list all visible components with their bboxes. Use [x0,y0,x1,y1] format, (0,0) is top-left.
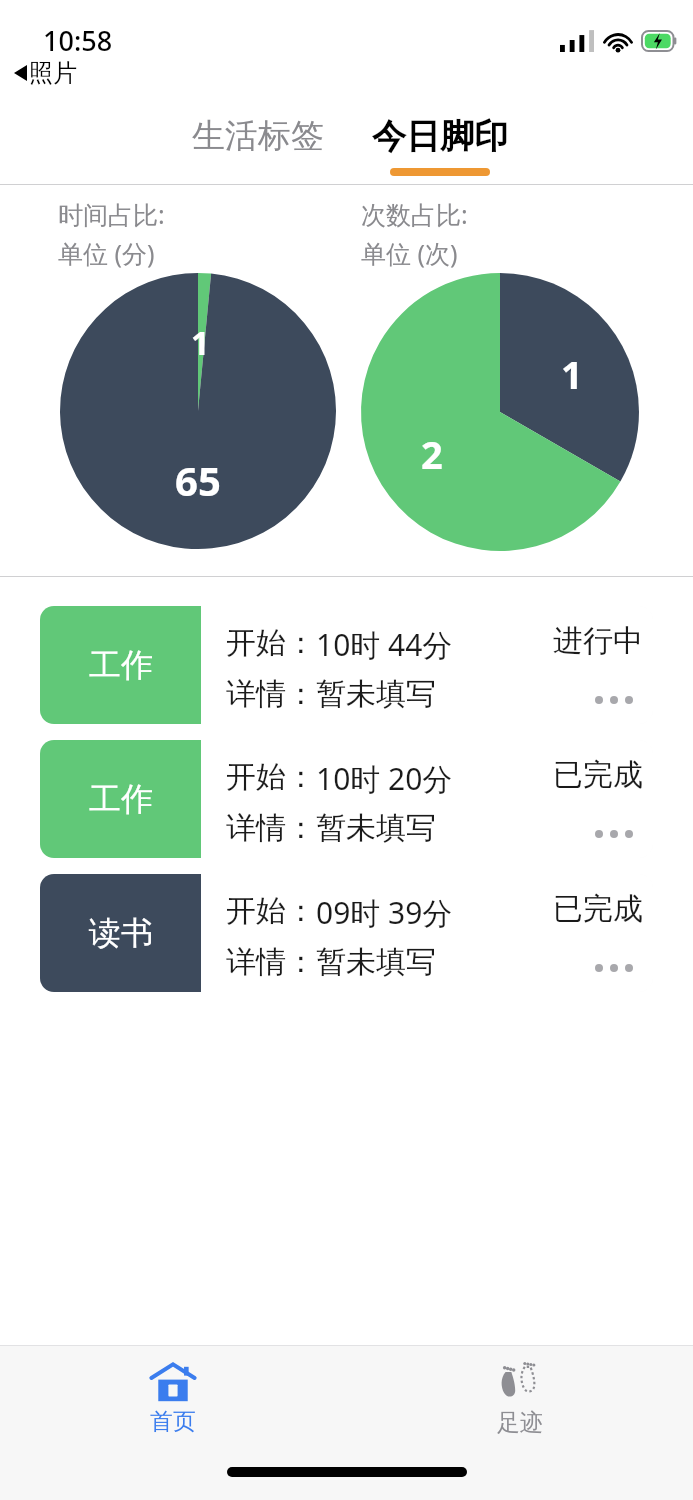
button[interactable]: 生活标签 [180,109,336,163]
staticText: 10时 44分 [316,624,453,665]
staticText: 详情： [226,675,316,713]
button[interactable]: 读书 [40,874,653,992]
staticText: 详情： [226,809,316,847]
staticText: 单位 (分) [58,236,155,270]
staticText: 暂未填写 [316,675,436,713]
button[interactable]: 工作 [40,606,653,724]
staticText: 单位 (次) [361,236,458,270]
button[interactable]: 工作 [40,740,653,858]
staticText: 首页 [150,1407,196,1436]
staticText: 开始： [226,624,316,662]
staticText: 1 [191,321,210,365]
staticText: 1 [561,348,583,400]
staticText: 已完成 [553,890,643,928]
staticText: 读书 [89,913,153,953]
button[interactable]: More options [587,688,641,712]
staticText: 今日脚印 [372,115,508,158]
staticText: 时间占比: [58,197,165,231]
staticText: 生活标签 [192,115,324,157]
button[interactable]: 首页 [128,1358,218,1440]
staticText: 2 [421,428,443,480]
staticText: 照片 [29,58,77,88]
staticText: 详情： [226,943,316,981]
staticText: 10时 20分 [316,758,453,799]
button[interactable]: More options [587,822,641,846]
staticText: 开始： [226,892,316,930]
staticText: 次数占比: [361,197,468,231]
staticText: 10:58 [43,22,113,59]
staticText: 已完成 [553,756,643,794]
staticText: 暂未填写 [316,809,436,847]
button[interactable]: 今日脚印 [366,109,514,176]
staticText: 暂未填写 [316,943,436,981]
staticText: 开始： [226,758,316,796]
button[interactable]: More options [587,956,641,980]
staticText: 进行中 [553,622,643,660]
staticText: 65 [175,453,221,507]
staticText: 工作 [89,779,153,819]
staticText: 工作 [89,645,153,685]
staticText: 09时 39分 [316,892,453,933]
staticText: 足迹 [497,1408,543,1437]
button[interactable]: 足迹 [474,1357,566,1441]
